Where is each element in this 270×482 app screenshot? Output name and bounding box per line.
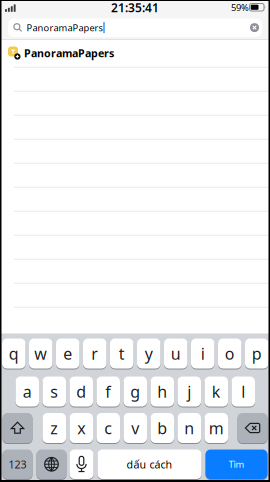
staticText: r [91,343,98,364]
button[interactable]: PanoramaPapers [0,40,270,66]
staticText: v [131,417,139,439]
button[interactable]: c [96,413,120,444]
staticText: a [23,381,32,402]
button[interactable]: v [123,413,147,444]
staticText: f [105,381,111,402]
button[interactable]: i [191,338,214,369]
staticText: i [201,343,205,364]
staticText: h [157,381,167,402]
button[interactable]: x [69,413,93,444]
button[interactable]: u [164,338,187,369]
staticText: w [34,343,47,364]
staticText: PanoramaPapers [24,46,114,60]
staticText: s [50,381,58,402]
staticText: l [241,381,245,402]
staticText: PanoramaPapers [26,21,102,34]
staticText: g [130,381,140,402]
staticText: z [50,417,58,439]
button[interactable] [237,413,267,444]
button[interactable]: s [42,376,66,407]
staticText: d [76,381,86,402]
button[interactable]: j [177,376,201,407]
staticText: c [104,417,112,439]
button[interactable]: r [83,338,106,369]
button[interactable]: o [218,338,241,369]
button[interactable]: dấu cách [97,449,201,480]
button[interactable] [8,18,262,37]
button[interactable] [69,449,93,480]
staticText: e [63,343,72,364]
button[interactable]: g [123,376,147,407]
button[interactable]: l [231,376,255,407]
staticText: x [77,417,85,439]
button[interactable]: y [137,338,160,369]
staticText: u [171,343,181,364]
button[interactable]: w [29,338,52,369]
button[interactable]: t [110,338,133,369]
button[interactable]: d [69,376,93,407]
button[interactable]: m [204,413,228,444]
button[interactable]: a [15,376,39,407]
button[interactable] [36,449,66,480]
button[interactable]: n [177,413,201,444]
staticText: j [187,381,191,402]
staticText: dấu cách [126,457,172,471]
button[interactable]: e [56,338,79,369]
button[interactable] [2,413,32,444]
staticText: k [212,381,221,402]
button[interactable]: k [204,376,228,407]
staticText: q [9,343,19,364]
button[interactable]: 123 [2,449,32,480]
staticText: n [184,417,194,439]
staticText: o [225,343,235,364]
button[interactable] [250,23,259,32]
button[interactable]: b [150,413,174,444]
staticText: t [119,343,125,364]
button[interactable]: f [96,376,120,407]
button[interactable]: Tìm [205,449,267,480]
button[interactable]: z [42,413,66,444]
button[interactable]: h [150,376,174,407]
staticText: 59% [231,1,249,14]
button[interactable]: p [245,338,268,369]
staticText: p [252,343,262,364]
staticText: y [145,343,153,364]
staticText: 21:35:41 [111,0,159,15]
staticText: b [157,417,167,439]
staticText: Tìm [228,458,244,470]
staticText: 123 [8,457,26,471]
button[interactable]: q [2,338,25,369]
staticText: m [209,417,224,439]
